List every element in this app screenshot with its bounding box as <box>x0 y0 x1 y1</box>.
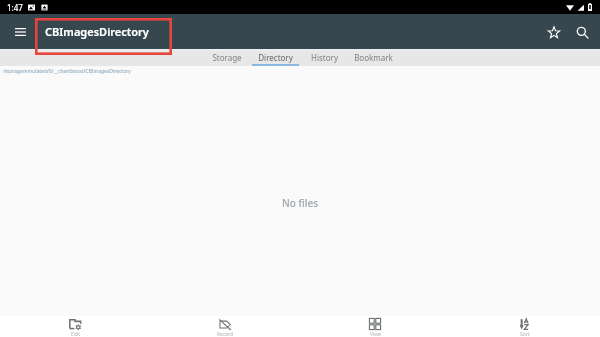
staticText: History <box>311 52 338 63</box>
button[interactable]: Directory <box>251 49 300 66</box>
button[interactable]: Open navigation drawer <box>8 19 33 44</box>
button[interactable]: View <box>300 316 450 337</box>
staticText: View <box>370 331 381 337</box>
button[interactable]: Add bookmark <box>540 18 568 46</box>
staticText: 1:47 <box>7 2 23 13</box>
staticText: Sort <box>520 331 530 337</box>
button[interactable]: Sort <box>450 316 600 337</box>
staticText: CBImagesDirectory <box>45 24 149 39</box>
staticText: Directory <box>258 52 293 63</box>
button[interactable]: Bookmark <box>349 49 398 66</box>
staticText: Storage <box>212 52 242 63</box>
staticText: Record <box>217 331 234 337</box>
staticText: Bookmark <box>354 52 393 63</box>
staticText: No files <box>282 196 319 210</box>
button[interactable]: Record <box>150 316 300 337</box>
button[interactable]: Search <box>568 18 596 46</box>
staticText: Edit <box>71 331 80 337</box>
button[interactable]: History <box>300 49 349 66</box>
button[interactable]: Edit <box>0 316 150 337</box>
button[interactable]: Storage <box>202 49 251 66</box>
staticText: /storage/emulated/0/__chartboost/CBImage… <box>3 68 131 75</box>
